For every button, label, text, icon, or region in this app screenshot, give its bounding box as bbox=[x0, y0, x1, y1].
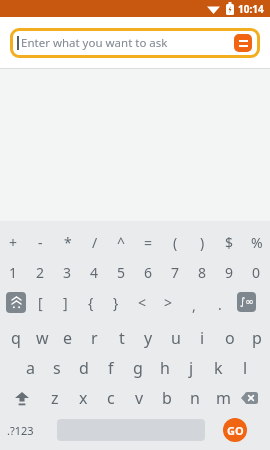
button[interactable]: w bbox=[29, 323, 55, 353]
button[interactable]: 9 bbox=[216, 257, 243, 287]
button[interactable]: d bbox=[70, 353, 97, 383]
button[interactable]: * bbox=[54, 227, 81, 257]
button[interactable]: ] bbox=[53, 287, 78, 317]
button[interactable]: . bbox=[207, 287, 233, 317]
staticText: .?123 bbox=[7, 423, 34, 438]
button[interactable]: m bbox=[209, 383, 237, 413]
button[interactable]: n bbox=[181, 383, 209, 413]
staticText: w bbox=[36, 327, 49, 349]
button[interactable]: 1 bbox=[0, 257, 27, 287]
button[interactable]: a bbox=[17, 353, 43, 383]
button[interactable] bbox=[3, 287, 28, 317]
button[interactable]: 2 bbox=[27, 257, 54, 287]
button[interactable]: ∫∞ bbox=[233, 287, 259, 317]
staticText: 9 bbox=[225, 263, 234, 282]
button[interactable]: p bbox=[243, 323, 270, 353]
button[interactable]: ^ bbox=[108, 227, 135, 257]
staticText: 0 bbox=[252, 263, 261, 282]
button[interactable]: 3 bbox=[54, 257, 81, 287]
staticText: h bbox=[160, 357, 170, 379]
staticText: 8 bbox=[198, 263, 207, 282]
button[interactable]: , bbox=[181, 287, 207, 317]
staticText: o bbox=[225, 327, 235, 349]
button[interactable]: i bbox=[189, 323, 216, 353]
button[interactable]: l bbox=[232, 353, 259, 383]
staticText: ] bbox=[63, 293, 68, 312]
button[interactable]: 6 bbox=[135, 257, 162, 287]
staticText: ) bbox=[200, 233, 205, 252]
button[interactable]: g bbox=[124, 353, 151, 383]
button[interactable]: 5 bbox=[108, 257, 135, 287]
button[interactable]: q bbox=[3, 323, 29, 353]
staticText: / bbox=[92, 233, 98, 252]
button[interactable]: 0 bbox=[243, 257, 270, 287]
button[interactable]: } bbox=[103, 287, 129, 317]
button[interactable]: ( bbox=[162, 227, 189, 257]
button[interactable]: > bbox=[155, 287, 181, 317]
staticText: j bbox=[189, 357, 194, 379]
button[interactable]: k bbox=[205, 353, 232, 383]
button[interactable]: = bbox=[135, 227, 162, 257]
button[interactable]: h bbox=[151, 353, 178, 383]
staticText: m bbox=[216, 387, 231, 409]
staticText: Enter what you want to ask bbox=[21, 35, 168, 51]
button[interactable]: + bbox=[0, 227, 27, 257]
staticText: % bbox=[251, 233, 263, 252]
button[interactable]: { bbox=[78, 287, 103, 317]
staticText: f bbox=[108, 357, 114, 379]
button[interactable]: 7 bbox=[162, 257, 189, 287]
button[interactable]: < bbox=[129, 287, 155, 317]
button[interactable]: r bbox=[81, 323, 108, 353]
staticText: ( bbox=[173, 233, 178, 252]
button[interactable]: j bbox=[178, 353, 205, 383]
staticText: $ bbox=[225, 233, 234, 252]
button[interactable]: s bbox=[43, 353, 70, 383]
staticText: y bbox=[144, 327, 153, 349]
button[interactable] bbox=[237, 383, 262, 413]
button[interactable]: f bbox=[97, 353, 124, 383]
button[interactable]: x bbox=[69, 383, 97, 413]
button[interactable]: .?123 bbox=[0, 415, 40, 445]
button[interactable]: GO bbox=[223, 418, 247, 442]
staticText: q bbox=[11, 327, 21, 349]
button[interactable]: t bbox=[108, 323, 135, 353]
staticText: , bbox=[192, 296, 196, 315]
staticText: . bbox=[218, 295, 222, 314]
staticText: r bbox=[91, 327, 98, 349]
staticText: a bbox=[26, 357, 35, 379]
staticText: l bbox=[243, 357, 248, 379]
button[interactable]: Enter what you want to ask bbox=[10, 28, 260, 58]
button[interactable]: y bbox=[135, 323, 162, 353]
staticText: 1 bbox=[9, 263, 18, 282]
staticText: { bbox=[88, 293, 94, 312]
staticText: 6 bbox=[144, 263, 153, 282]
staticText: s bbox=[53, 357, 61, 379]
button[interactable]: b bbox=[153, 383, 181, 413]
staticText: + bbox=[9, 233, 18, 252]
staticText: n bbox=[190, 387, 200, 409]
button[interactable] bbox=[234, 34, 252, 52]
button[interactable] bbox=[2, 383, 41, 413]
staticText: GO bbox=[227, 423, 244, 438]
staticText: p bbox=[252, 327, 262, 349]
button[interactable]: - bbox=[27, 227, 54, 257]
staticText: < bbox=[138, 293, 147, 312]
button[interactable]: o bbox=[216, 323, 243, 353]
staticText: - bbox=[38, 233, 43, 252]
staticText: g bbox=[133, 357, 143, 379]
button[interactable]: z bbox=[41, 383, 69, 413]
button[interactable]: % bbox=[243, 227, 270, 257]
button[interactable]: e bbox=[55, 323, 81, 353]
button[interactable]: / bbox=[81, 227, 108, 257]
button[interactable]: c bbox=[97, 383, 125, 413]
button[interactable]: v bbox=[125, 383, 153, 413]
button[interactable]: [ bbox=[28, 287, 53, 317]
staticText: t bbox=[119, 327, 125, 349]
button[interactable]: ) bbox=[189, 227, 216, 257]
button[interactable]: u bbox=[162, 323, 189, 353]
button[interactable]: 8 bbox=[189, 257, 216, 287]
button[interactable]: 4 bbox=[81, 257, 108, 287]
button[interactable]: $ bbox=[216, 227, 243, 257]
staticText: 4 bbox=[90, 263, 99, 282]
